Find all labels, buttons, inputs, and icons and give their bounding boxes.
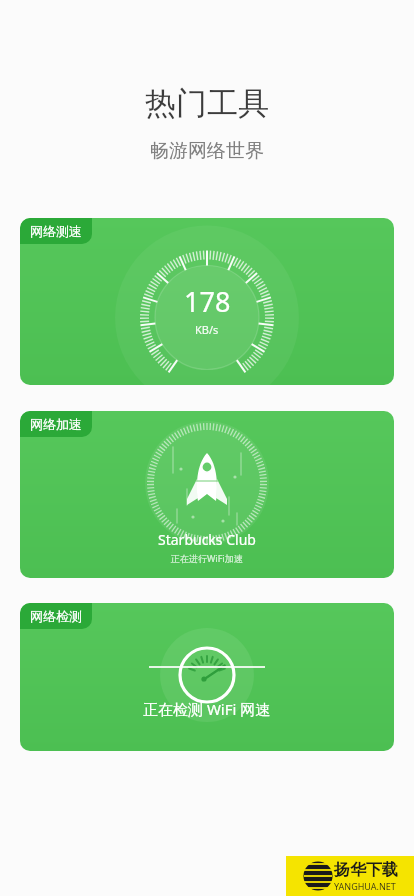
staticText: 正在检测 WiFi 网速 xyxy=(143,699,271,719)
staticText: 网络检测 xyxy=(30,608,82,624)
staticText: Starbucks Club xyxy=(158,530,256,549)
staticText: KB/s xyxy=(195,322,219,337)
staticText: 178 xyxy=(184,283,231,320)
button[interactable]: Starbucks Club xyxy=(20,411,394,578)
staticText: 畅游网络世界 xyxy=(0,139,414,163)
staticText: 热门工具 xyxy=(0,84,414,123)
staticText: 扬华下载 xyxy=(334,860,398,880)
button[interactable]: 正在检测 WiFi 网速 xyxy=(20,603,394,751)
other: Watermark xyxy=(286,856,414,896)
staticText: YANGHUA.NET xyxy=(334,880,396,892)
staticText: 网络测速 xyxy=(30,223,82,239)
button[interactable]: 178 xyxy=(20,218,394,385)
staticText: 正在进行WiFi加速 xyxy=(171,552,243,564)
staticText: 网络加速 xyxy=(30,416,82,432)
